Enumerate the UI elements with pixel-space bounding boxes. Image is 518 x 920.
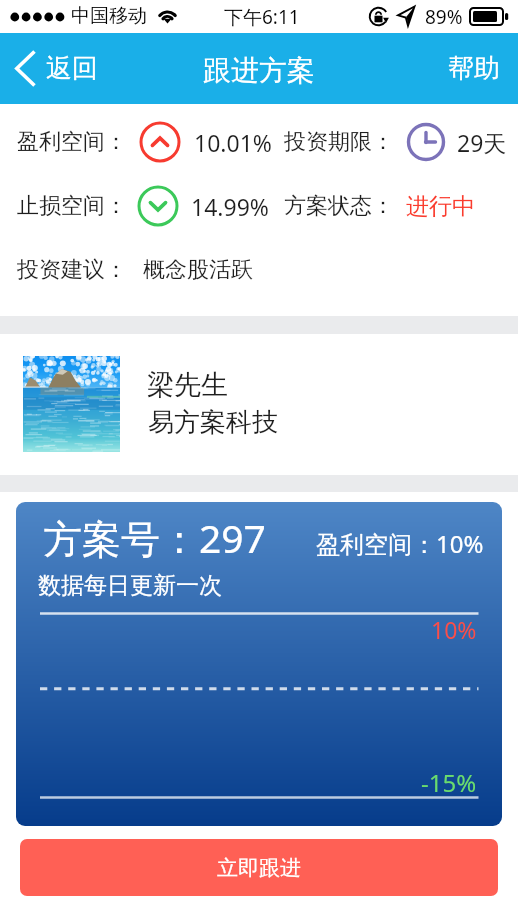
staticText: 盈利空间：10% — [316, 527, 484, 560]
staticText: -15% — [421, 766, 477, 799]
staticText: 盈利空间： — [17, 128, 127, 156]
staticText: 帮助 — [448, 52, 500, 85]
button[interactable]: Back — [0, 41, 112, 96]
staticText: 数据每日更新一次 — [38, 571, 222, 600]
staticText: 易方案科技 — [148, 406, 278, 439]
staticText: 方案号：297 — [43, 511, 266, 564]
staticText: 89% — [425, 4, 463, 30]
staticText: 止损空间： — [17, 192, 127, 220]
staticText: 中国移动 — [71, 4, 147, 28]
staticText: 下午6:11 — [224, 4, 300, 30]
staticText: 梁先生 — [147, 368, 228, 402]
staticText: 投资建议： — [17, 256, 127, 284]
staticText: 进行中 — [406, 192, 475, 221]
button[interactable]: 立即跟进 — [20, 839, 498, 896]
staticText: 10% — [431, 614, 477, 645]
staticText: 投资期限： — [284, 128, 394, 156]
staticText: 概念股活跃 — [143, 256, 253, 284]
staticText: 跟进方案 — [203, 53, 315, 88]
staticText: 10.01% — [194, 127, 272, 158]
staticText: 立即跟进 — [217, 855, 301, 881]
staticText: 29天 — [457, 127, 507, 158]
staticText: 14.99% — [191, 191, 269, 222]
other: Back — [15, 51, 35, 86]
staticText: 返回 — [46, 52, 98, 85]
button[interactable]: 帮助 — [430, 40, 518, 97]
staticText: 方案状态： — [284, 192, 394, 220]
